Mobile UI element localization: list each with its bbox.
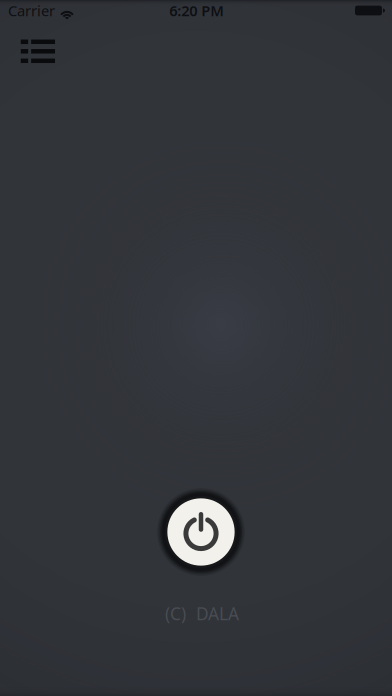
button[interactable]: Menu [11,28,65,74]
staticText: Carrier [8,1,55,20]
staticText: (C) DALA [165,602,239,625]
staticText: 6:20 PM [169,1,224,20]
button[interactable]: Power [153,484,249,580]
